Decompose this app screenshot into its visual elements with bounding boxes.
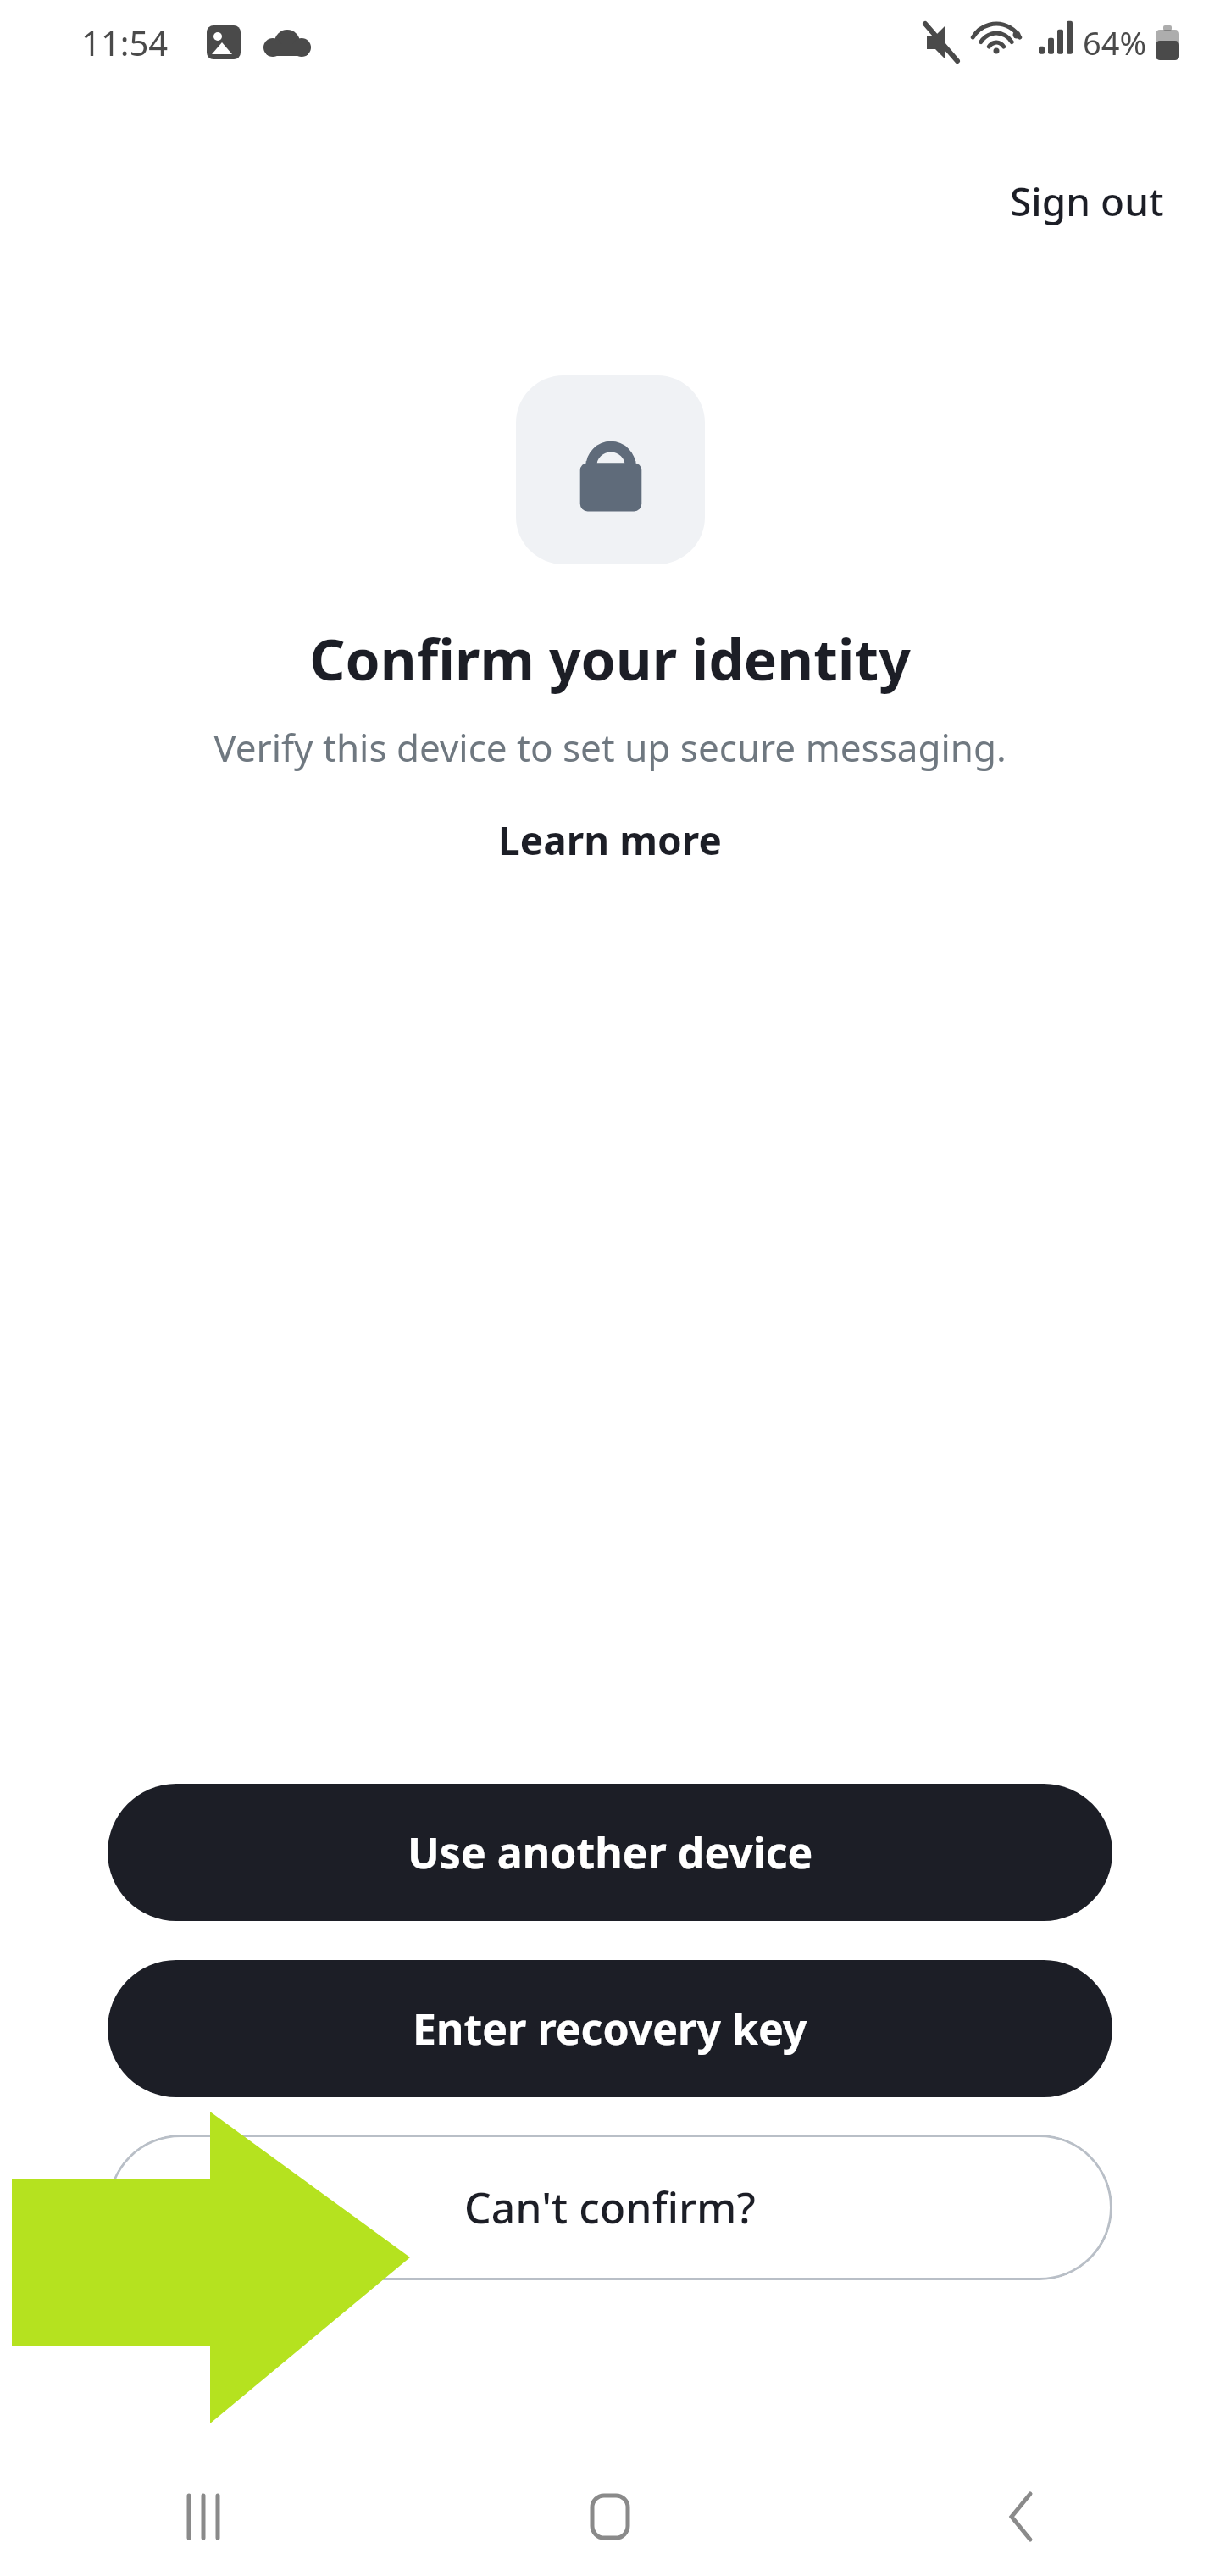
button[interactable]: Can't confirm?	[108, 2135, 1112, 2280]
staticText: Can't confirm?	[464, 2179, 756, 2236]
staticText: 64%	[1083, 20, 1147, 64]
button[interactable]: Use another device	[108, 1784, 1112, 1921]
staticText: 11:54	[81, 19, 169, 65]
button[interactable]: Learn more	[481, 803, 739, 877]
button[interactable]: Sign out	[996, 166, 1178, 236]
button[interactable]: Recent apps	[0, 2457, 407, 2576]
staticText: Use another device	[408, 1824, 813, 1881]
button[interactable]: Enter recovery key	[108, 1960, 1112, 2097]
staticText: Learn more	[498, 813, 722, 867]
staticText: Sign out	[1010, 175, 1164, 228]
staticText: Confirm your identity	[309, 620, 911, 697]
staticText: Verify this device to set up secure mess…	[213, 722, 1006, 773]
staticText: Enter recovery key	[413, 2000, 807, 2057]
button[interactable]: Back	[813, 2457, 1220, 2576]
button[interactable]: Home	[407, 2457, 813, 2576]
